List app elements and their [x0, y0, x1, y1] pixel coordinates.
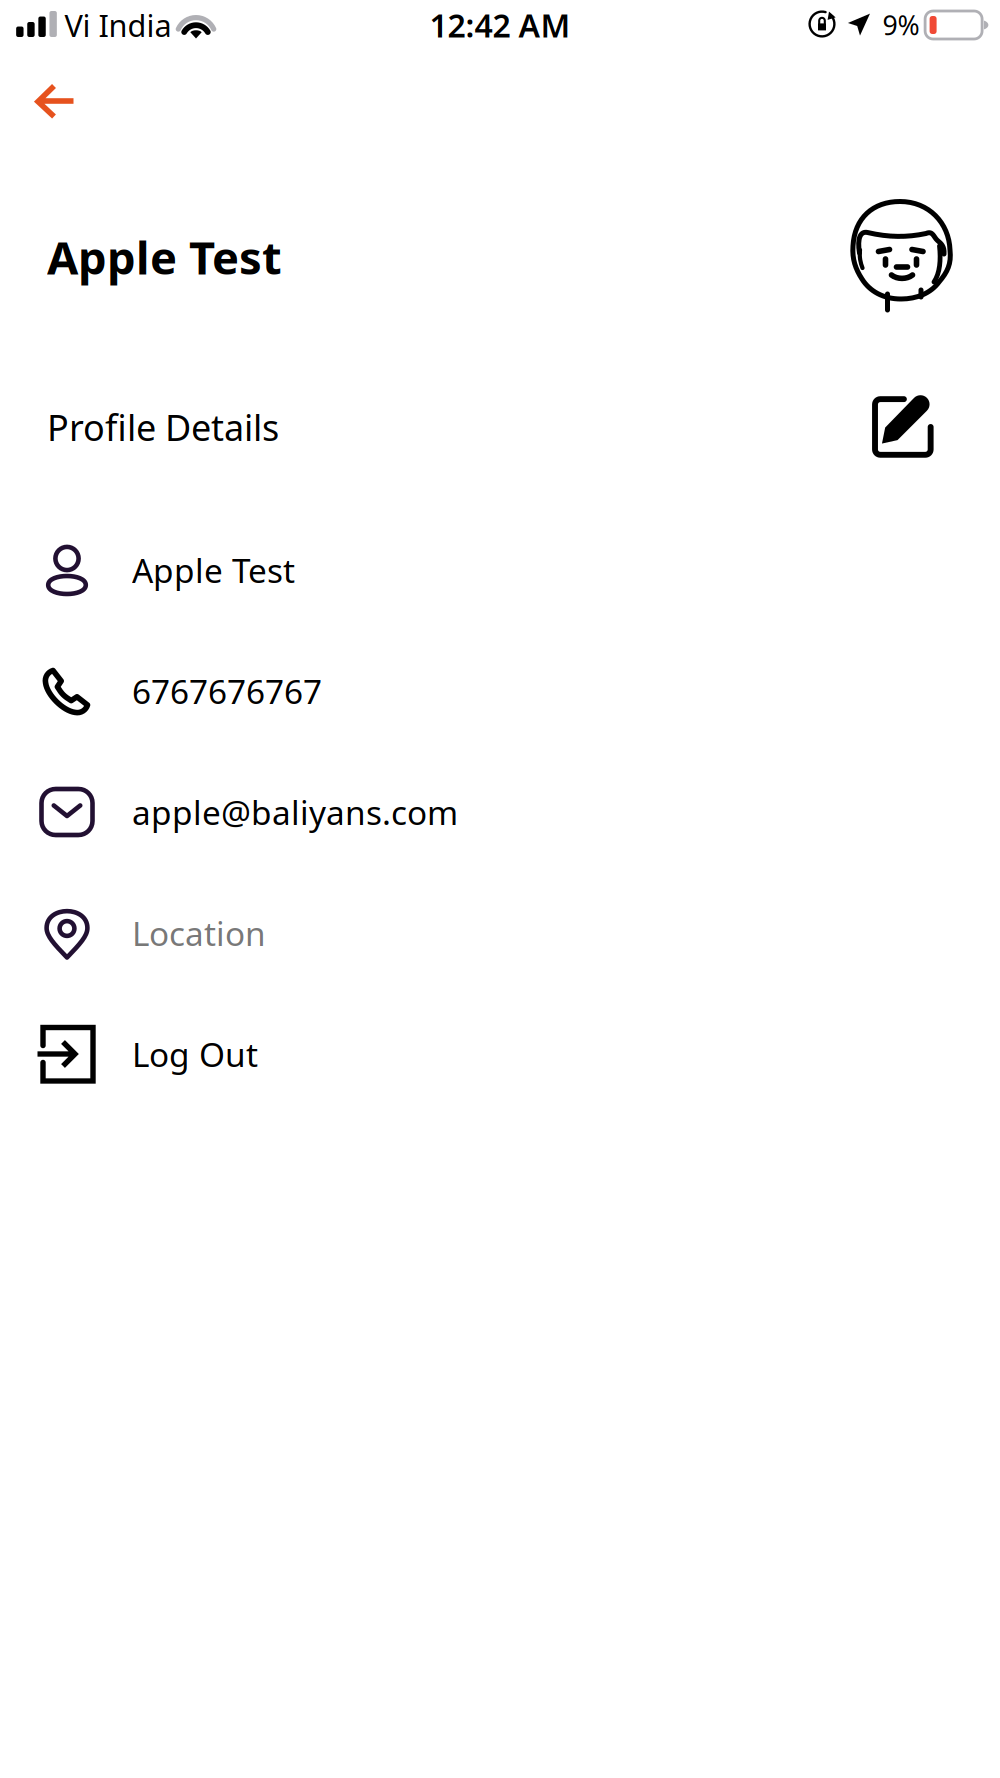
button[interactable]: 6767676767: [0, 637, 1000, 745]
staticText: 6767676767: [132, 669, 322, 713]
staticText: Vi India: [64, 5, 171, 45]
staticText: Location: [132, 911, 266, 955]
button[interactable]: Back: [13, 58, 99, 144]
staticText: Log Out: [132, 1032, 258, 1076]
button[interactable]: Location: [0, 879, 1000, 987]
staticText: Apple Test: [47, 227, 282, 287]
button[interactable]: apple@baliyans.com: [0, 758, 1000, 866]
staticText: 12:42 AM: [429, 4, 570, 46]
button[interactable]: Apple Test: [0, 516, 1000, 624]
staticText: 9%: [882, 7, 919, 43]
button[interactable]: Log Out: [0, 1000, 1000, 1108]
staticText: Profile Details: [47, 403, 279, 451]
button[interactable]: Edit profile: [861, 383, 945, 467]
staticText: apple@baliyans.com: [132, 790, 458, 834]
staticText: Apple Test: [132, 548, 295, 592]
